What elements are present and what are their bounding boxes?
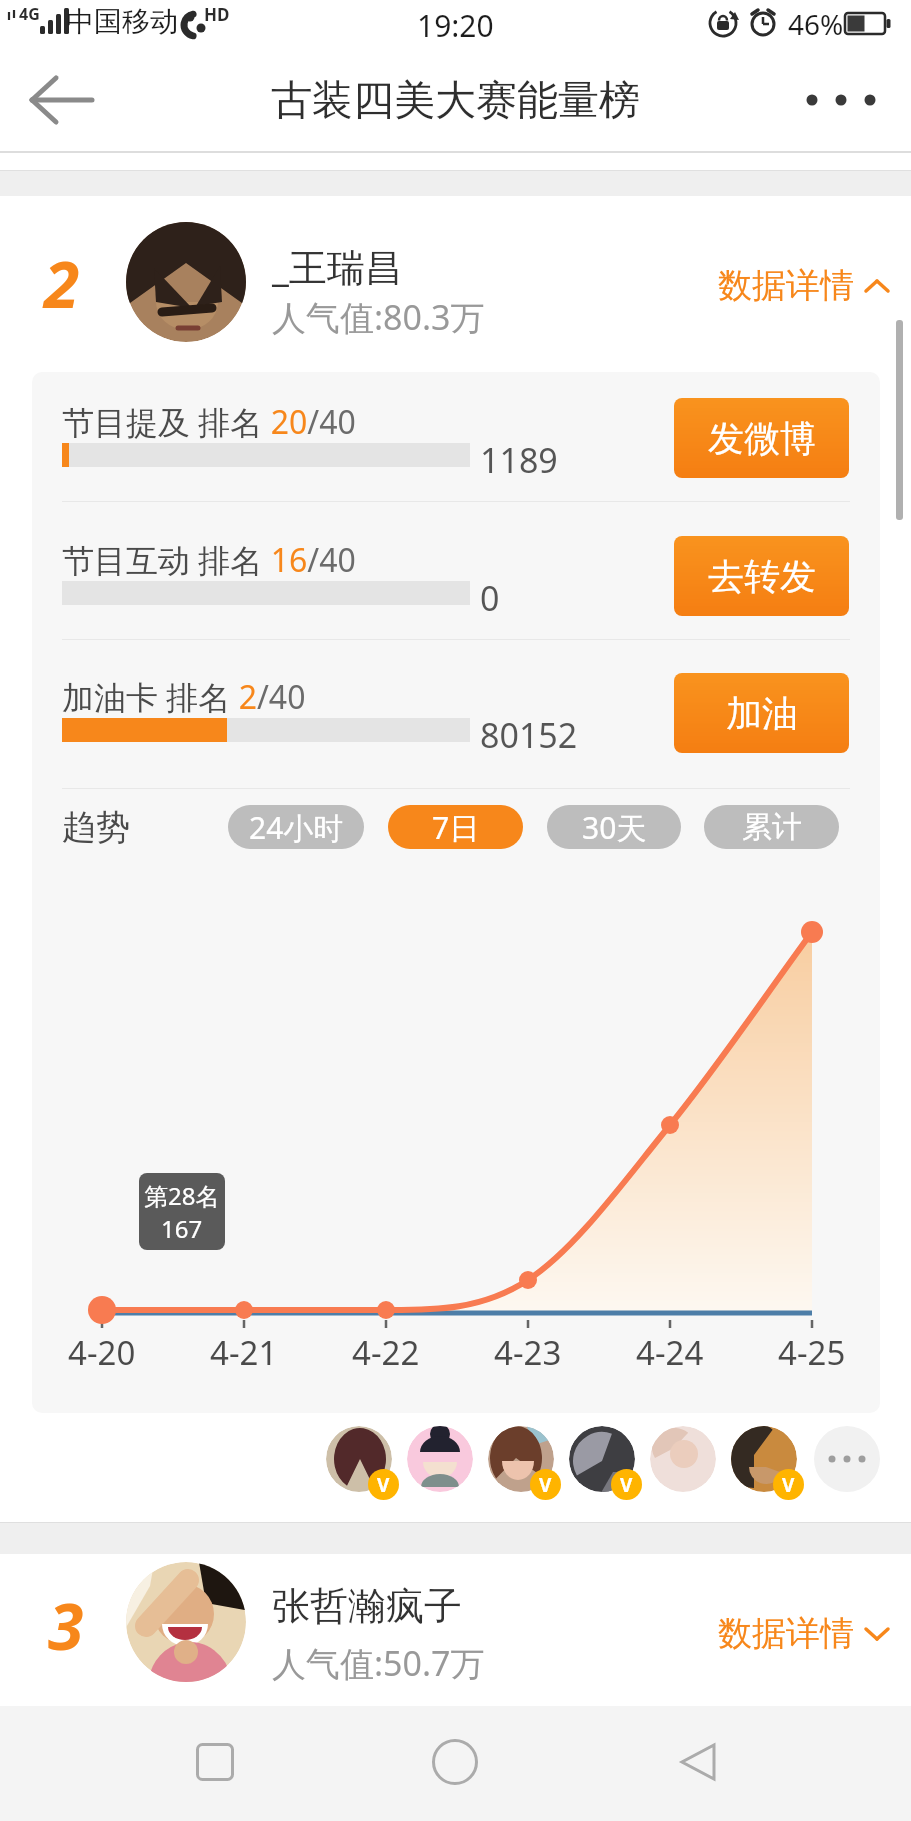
staticText: 节目互动 排名 16/40: [62, 538, 356, 582]
button[interactable]: 7日: [388, 805, 523, 849]
button[interactable]: 数据详情: [718, 264, 890, 307]
staticText: 3: [48, 1582, 84, 1669]
button[interactable]: 2: [0, 196, 911, 372]
button[interactable]: [678, 1742, 720, 1782]
staticText: 发微博: [708, 416, 816, 461]
staticText: 0: [480, 575, 500, 621]
staticText: 节目提及 排名 20/40: [62, 400, 356, 444]
button[interactable]: [432, 1739, 478, 1785]
staticText: 4-24: [636, 1330, 704, 1375]
staticText: HD: [204, 3, 230, 26]
button[interactable]: [814, 1426, 880, 1492]
staticText: 4G: [19, 3, 40, 25]
staticText: 数据详情: [718, 264, 854, 307]
staticText: 趋势: [62, 806, 130, 849]
button[interactable]: 去转发: [674, 536, 849, 616]
button[interactable]: [650, 1426, 716, 1492]
button[interactable]: [326, 1426, 392, 1492]
staticText: 人气值:50.7万: [272, 1640, 485, 1686]
staticText: 古装四美大赛能量榜: [271, 75, 640, 127]
staticText: 46%: [788, 5, 844, 43]
staticText: 2: [44, 240, 80, 327]
staticText: 19:20: [417, 5, 494, 46]
button[interactable]: 加油: [674, 673, 849, 753]
staticText: 1189: [480, 437, 558, 483]
button[interactable]: V: [530, 1469, 561, 1500]
button[interactable]: [488, 1426, 554, 1492]
staticText: 累计: [742, 808, 802, 846]
button[interactable]: V: [611, 1469, 642, 1500]
button[interactable]: V: [368, 1469, 399, 1500]
staticText: 人气值:80.3万: [272, 294, 485, 340]
staticText: 167: [161, 1212, 203, 1245]
button[interactable]: [407, 1426, 473, 1492]
staticText: 4-22: [352, 1330, 420, 1375]
staticText: 80152: [480, 712, 578, 758]
button[interactable]: [30, 70, 96, 130]
staticText: 第28名: [144, 1179, 220, 1212]
staticText: 4-21: [210, 1330, 278, 1375]
staticText: 4-23: [494, 1330, 562, 1375]
staticText: 数据详情: [718, 1612, 854, 1655]
staticText: 4-20: [68, 1330, 136, 1375]
staticText: 24小时: [249, 807, 344, 848]
staticText: _王瑞昌: [272, 240, 403, 292]
button[interactable]: 3: [0, 1554, 911, 1706]
staticText: 加油卡 排名 2/40: [62, 675, 306, 719]
button[interactable]: 累计: [704, 805, 839, 849]
button[interactable]: [196, 1743, 234, 1781]
button[interactable]: 30天: [547, 805, 681, 849]
staticText: 加油: [726, 691, 798, 736]
staticText: V: [620, 1472, 633, 1498]
staticText: V: [782, 1472, 795, 1498]
button[interactable]: V: [773, 1469, 804, 1500]
staticText: V: [377, 1472, 390, 1498]
staticText: 张哲瀚疯子: [272, 1582, 462, 1630]
staticText: 中国移动: [66, 4, 178, 39]
button[interactable]: [800, 80, 880, 120]
staticText: 30天: [582, 807, 647, 848]
button[interactable]: [731, 1426, 797, 1492]
button[interactable]: 24小时: [228, 805, 364, 849]
staticText: 7日: [432, 807, 480, 848]
staticText: 去转发: [708, 554, 816, 599]
button[interactable]: 数据详情: [718, 1612, 890, 1655]
staticText: V: [539, 1472, 552, 1498]
button[interactable]: [569, 1426, 635, 1492]
button[interactable]: 发微博: [674, 398, 849, 478]
staticText: 4-25: [778, 1330, 846, 1375]
